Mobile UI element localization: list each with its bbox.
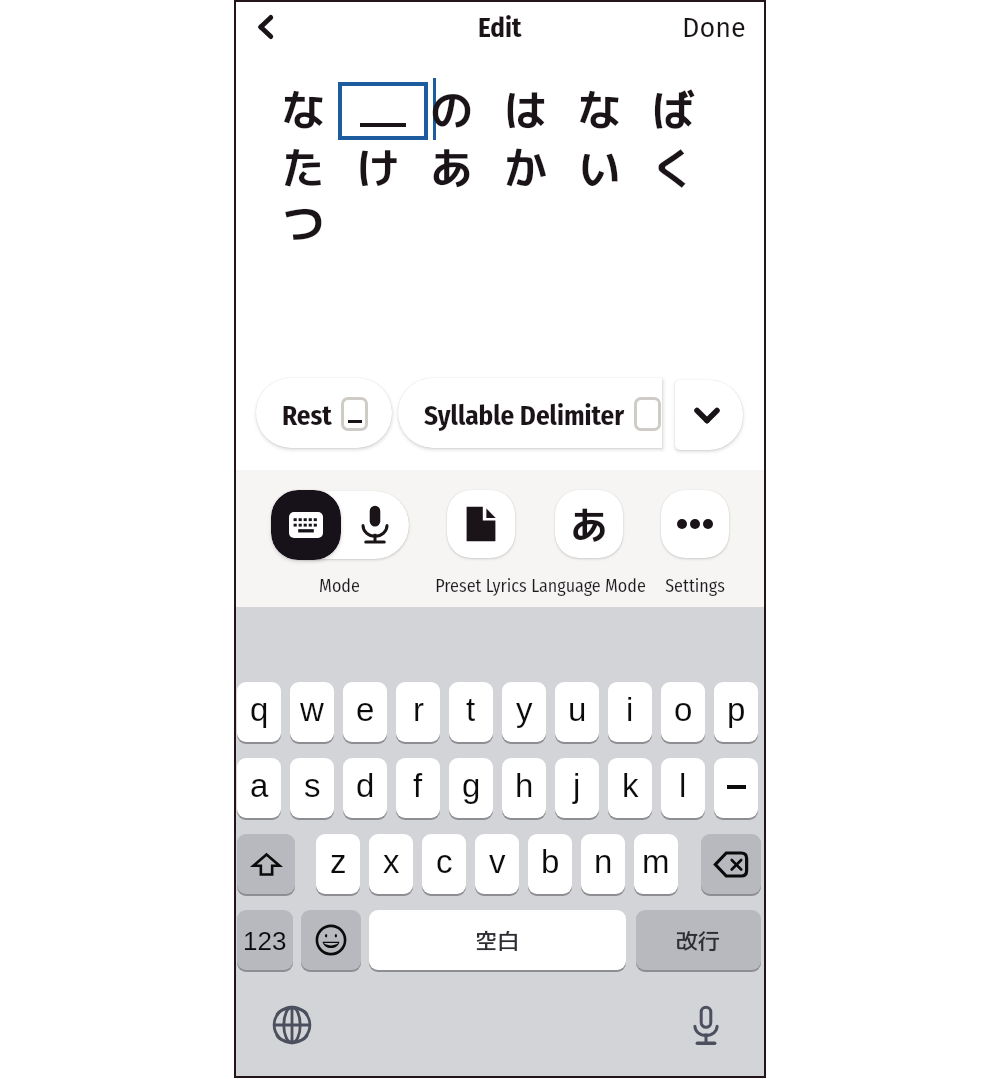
button[interactable]: d — [343, 758, 387, 818]
button[interactable]: b — [528, 834, 572, 894]
staticText: z — [330, 843, 347, 880]
button[interactable]: l — [661, 758, 705, 818]
button[interactable]: Language Mode — [555, 490, 623, 558]
button[interactable]: z — [316, 834, 360, 894]
staticText: Done — [682, 12, 746, 44]
button[interactable]: Back — [242, 3, 290, 51]
button[interactable]: m — [634, 834, 678, 894]
button[interactable]: f — [396, 758, 440, 818]
button[interactable]: Rest — [256, 378, 392, 448]
button[interactable]: Settings — [661, 490, 729, 558]
staticText: く — [652, 138, 695, 198]
staticText: x — [383, 843, 400, 880]
staticText: i — [626, 691, 634, 728]
staticText: ば — [652, 80, 695, 140]
button[interactable]: n — [581, 834, 625, 894]
staticText: Edit — [478, 12, 522, 44]
button[interactable]: w — [290, 682, 334, 742]
staticText: v — [489, 843, 506, 880]
staticText: 改行 — [676, 925, 721, 956]
staticText: c — [436, 843, 453, 880]
staticText: d — [356, 767, 375, 804]
button[interactable]: Numbers — [237, 910, 293, 970]
staticText: あ — [430, 138, 473, 198]
staticText: j — [573, 767, 581, 804]
staticText: f — [413, 767, 423, 804]
staticText: o — [674, 691, 693, 728]
staticText: か — [504, 138, 547, 198]
staticText: k — [622, 767, 639, 804]
staticText: の — [430, 80, 473, 140]
staticText: け — [356, 138, 399, 198]
button[interactable]: h — [502, 758, 546, 818]
button[interactable]: r — [396, 682, 440, 742]
button[interactable]: y — [502, 682, 546, 742]
staticText: b — [541, 843, 560, 880]
button[interactable]: a — [237, 758, 281, 818]
button[interactable]: Syllable Delimiter — [398, 378, 662, 448]
button[interactable]: u — [555, 682, 599, 742]
staticText: p — [727, 691, 746, 728]
staticText: s — [304, 767, 321, 804]
staticText: な — [282, 80, 325, 140]
staticText: u — [568, 691, 587, 728]
button[interactable]: Voice input mode — [341, 491, 409, 559]
staticText: h — [515, 767, 534, 804]
button[interactable]: 空白 — [369, 910, 626, 970]
staticText: た — [282, 138, 325, 198]
button[interactable]: t — [449, 682, 493, 742]
staticText: w — [300, 691, 324, 728]
button[interactable]: Emoji — [301, 910, 361, 970]
button[interactable]: p — [714, 682, 758, 742]
staticText: は — [504, 80, 547, 140]
staticText: い — [578, 138, 621, 198]
button[interactable]: 改行 — [636, 910, 761, 970]
staticText: a — [250, 767, 269, 804]
staticText: 空白 — [475, 925, 520, 956]
staticText: g — [462, 767, 481, 804]
button[interactable]: o — [661, 682, 705, 742]
button[interactable]: i — [608, 682, 652, 742]
staticText: e — [356, 691, 375, 728]
button[interactable]: Backspace — [701, 834, 761, 894]
button[interactable]: Shift — [237, 834, 295, 894]
staticText: あ — [570, 498, 609, 551]
button[interactable]: q — [237, 682, 281, 742]
button[interactable]: s — [290, 758, 334, 818]
staticText: つ — [282, 193, 325, 253]
button[interactable]: Done — [670, 4, 765, 52]
button[interactable] — [338, 82, 428, 140]
button[interactable]: x — [369, 834, 413, 894]
button[interactable]: Preset Lyrics — [447, 490, 515, 558]
button[interactable]: g — [449, 758, 493, 818]
staticText: n — [594, 843, 613, 880]
button[interactable]: k — [608, 758, 652, 818]
staticText: な — [578, 80, 621, 140]
button[interactable]: j — [555, 758, 599, 818]
button[interactable]: Dash — [714, 758, 758, 818]
staticText: q — [250, 691, 269, 728]
button[interactable]: c — [422, 834, 466, 894]
button[interactable]: e — [343, 682, 387, 742]
staticText: Mode — [319, 575, 360, 597]
staticText: l — [679, 767, 687, 804]
button[interactable]: v — [475, 834, 519, 894]
staticText: 123 — [243, 926, 287, 955]
staticText: Syllable Delimiter — [424, 400, 625, 432]
staticText: t — [466, 691, 476, 728]
staticText: y — [516, 691, 533, 728]
staticText: m — [642, 843, 670, 880]
staticText: Settings — [665, 575, 725, 597]
button[interactable]: Show more options — [675, 380, 743, 450]
button[interactable]: Keyboard input mode — [271, 490, 341, 560]
staticText: Language Mode — [531, 575, 646, 597]
staticText: r — [413, 691, 424, 728]
staticText: Preset Lyrics — [435, 575, 527, 597]
button[interactable]: Switch keyboard language — [267, 1000, 317, 1050]
staticText: Rest — [282, 400, 332, 432]
button[interactable]: Dictation — [681, 1000, 731, 1050]
